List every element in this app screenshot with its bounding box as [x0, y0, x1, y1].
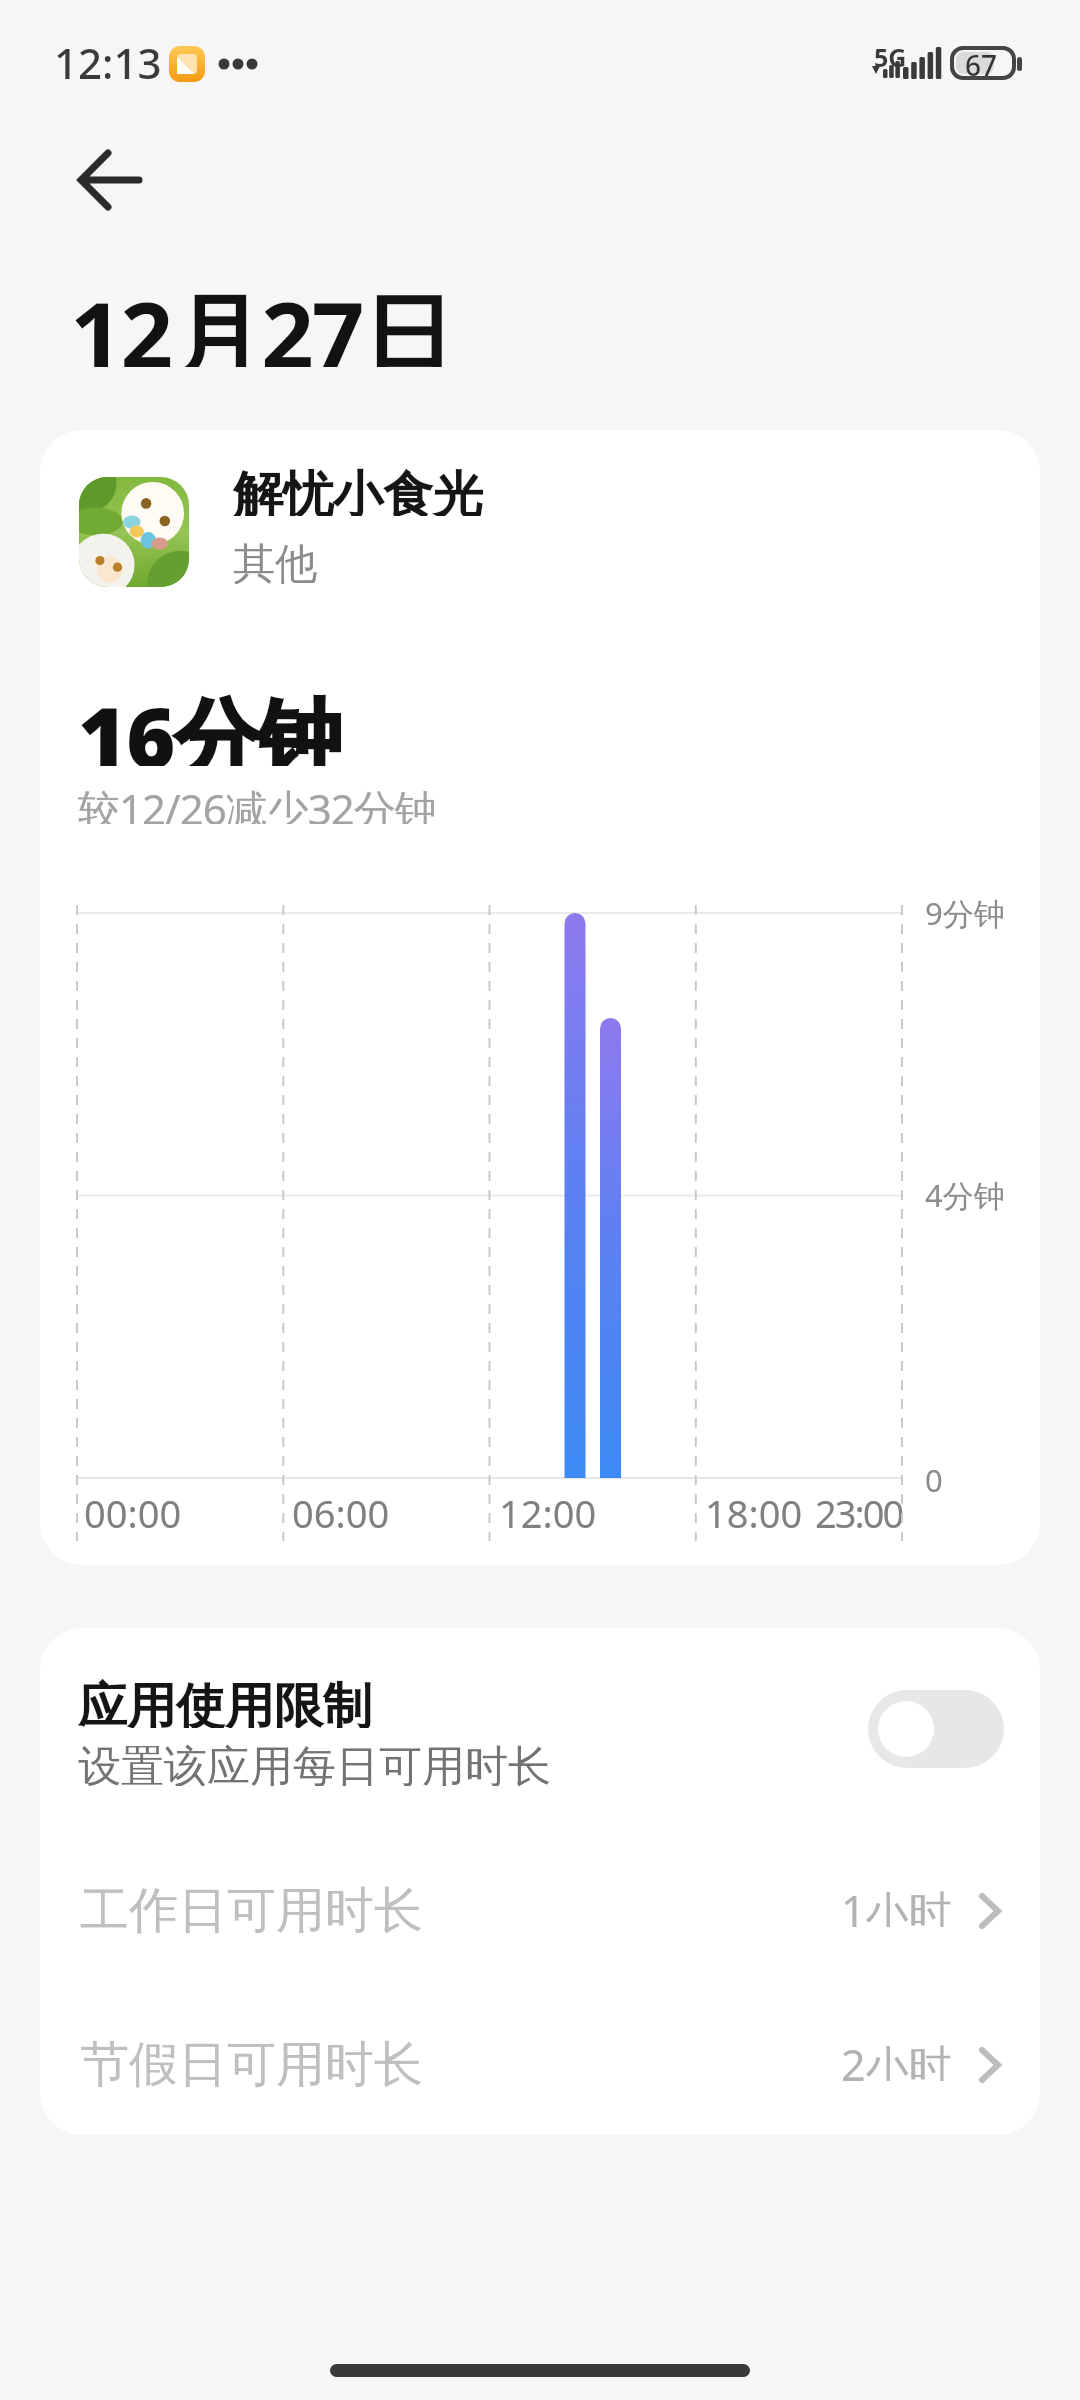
staticText: 解忧小食光 — [233, 464, 483, 516]
staticText: 应用使用限制 — [78, 1676, 372, 1728]
staticText: 67 — [965, 46, 998, 80]
staticText: 1小时 — [841, 1881, 952, 1927]
button[interactable]: 节假日可用时长 — [60, 2012, 1020, 2118]
staticText: 12:00 — [499, 1487, 597, 1531]
button[interactable] — [56, 138, 160, 222]
button[interactable] — [868, 1690, 1004, 1768]
staticText: 23:00 — [815, 1487, 903, 1531]
staticText: 设置该应用每日可用时长 — [78, 1740, 551, 1786]
staticText: 12月27日 — [70, 271, 453, 367]
staticText: 9分钟 — [925, 892, 1005, 934]
staticText: 工作日可用时长 — [80, 1880, 423, 1942]
staticText: 较12/26减少32分钟 — [78, 780, 436, 824]
button[interactable] — [79, 477, 189, 587]
staticText: 4分钟 — [925, 1174, 1005, 1216]
staticText: 节假日可用时长 — [80, 2034, 423, 2096]
staticText: 00:00 — [84, 1487, 182, 1531]
staticText: 16分钟 — [78, 678, 341, 766]
staticText: 其他 — [233, 538, 317, 584]
button[interactable]: 工作日可用时长 — [60, 1858, 1020, 1964]
staticText: 0 — [925, 1459, 943, 1501]
staticText: 18:00 — [705, 1487, 803, 1531]
staticText: 06:00 — [292, 1487, 390, 1531]
staticText: 5G — [874, 40, 907, 68]
staticText: 2小时 — [841, 2035, 952, 2081]
staticText: 12:13 — [54, 34, 162, 91]
